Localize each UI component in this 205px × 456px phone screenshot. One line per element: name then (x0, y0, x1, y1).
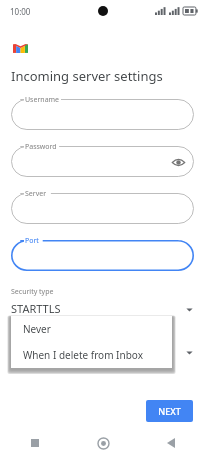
button[interactable]: Recents (0, 430, 69, 456)
staticText: Never (11, 344, 42, 359)
staticText: 10:00 (10, 6, 31, 17)
staticText: Password (25, 142, 57, 152)
staticText: Port (25, 236, 39, 246)
button[interactable]: Server (11, 193, 194, 224)
button[interactable]: Username (11, 99, 194, 130)
button[interactable]: When I delete from Inbox (11, 342, 172, 368)
staticText: STARTTLS (11, 301, 61, 316)
button[interactable]: Password (11, 146, 194, 177)
staticText: When I delete from Inbox (23, 348, 143, 362)
button[interactable]: Back (137, 430, 205, 456)
button[interactable]: NEXT (146, 400, 193, 422)
staticText: Security type (11, 287, 54, 297)
staticText: Delete emails from server (11, 330, 96, 340)
staticText: Username (25, 95, 60, 105)
button[interactable]: Security type (11, 287, 194, 316)
button[interactable]: Show password (170, 154, 186, 170)
staticText: NEXT (158, 405, 181, 417)
staticText: Never (23, 322, 51, 336)
button[interactable]: Never (11, 316, 172, 342)
button[interactable]: Home (69, 430, 137, 456)
button[interactable]: Port (11, 240, 194, 271)
staticText: Server (25, 189, 47, 199)
staticText: Incoming server settings (11, 67, 163, 85)
button[interactable]: Delete emails from server (11, 330, 194, 359)
